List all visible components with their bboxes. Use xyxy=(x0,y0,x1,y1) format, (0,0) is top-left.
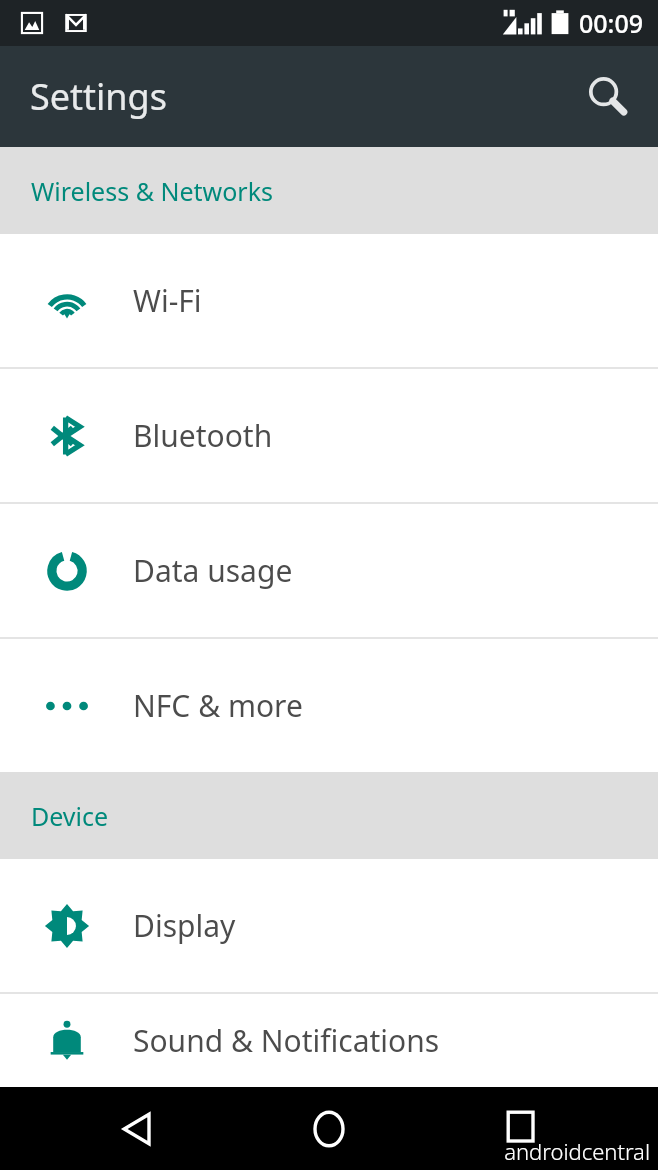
button[interactable]: Search xyxy=(572,61,644,133)
button[interactable]: NFC & more xyxy=(0,639,658,772)
staticText: Display xyxy=(133,905,236,946)
button[interactable]: Home xyxy=(274,1087,384,1170)
button[interactable]: Display xyxy=(0,859,658,992)
button[interactable]: Wi-Fi xyxy=(0,234,658,367)
staticText: Sound & Notifications xyxy=(133,1020,440,1061)
staticText: Settings xyxy=(30,72,167,121)
button[interactable]: Data usage xyxy=(0,504,658,637)
staticText: Device xyxy=(31,799,109,833)
button[interactable]: Recents xyxy=(466,1087,576,1170)
staticText: Wireless & Networks xyxy=(31,174,273,208)
staticText: NFC & more xyxy=(133,685,303,726)
staticText: androidcentral xyxy=(504,1136,650,1166)
staticText: Data usage xyxy=(133,550,293,591)
staticText: Bluetooth xyxy=(133,415,273,456)
button[interactable]: Back xyxy=(82,1087,192,1170)
staticText: 00:09 xyxy=(579,6,644,40)
button[interactable]: Sound & Notifications xyxy=(0,994,658,1087)
button[interactable]: Bluetooth xyxy=(0,369,658,502)
staticText: Wi-Fi xyxy=(133,280,202,321)
